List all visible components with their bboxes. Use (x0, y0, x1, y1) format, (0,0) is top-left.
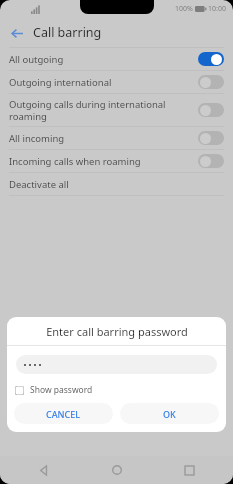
staticText: All outgoing (9, 53, 192, 66)
staticText: CANCEL (46, 408, 81, 420)
button[interactable]: CANCEL (14, 403, 113, 424)
button[interactable]: All incoming (0, 127, 233, 149)
staticText: Call barring (33, 24, 102, 41)
staticText: All incoming (9, 132, 192, 145)
button[interactable]: Show password (15, 382, 93, 398)
button[interactable]: OK (120, 403, 219, 424)
button[interactable]: Back (6, 22, 28, 44)
button[interactable]: Back (34, 460, 54, 480)
staticText: OK (163, 408, 176, 420)
button[interactable]: Password field (16, 355, 217, 374)
staticText: Show password (30, 384, 93, 396)
button[interactable]: Recents (179, 460, 199, 480)
staticText: 100% (175, 4, 193, 14)
staticText: Enter call barring password (46, 324, 188, 339)
button[interactable]: On (198, 52, 224, 66)
button[interactable]: All outgoing (0, 48, 233, 70)
button[interactable]: Home (107, 460, 127, 480)
button[interactable]: Outgoing calls during international roam… (0, 94, 233, 126)
button[interactable]: Incoming calls when roaming (0, 150, 233, 172)
button[interactable]: Off (198, 75, 224, 89)
button[interactable]: Off (198, 154, 224, 168)
button[interactable]: Off (198, 103, 224, 117)
button[interactable]: Off (198, 131, 224, 145)
button[interactable]: Outgoing international (0, 71, 233, 93)
button[interactable]: Deactivate all (0, 173, 233, 195)
staticText: Incoming calls when roaming (9, 155, 192, 168)
staticText: Outgoing international (9, 76, 192, 89)
staticText: 10:00 (208, 4, 226, 14)
staticText: Outgoing calls during international roam… (9, 98, 192, 122)
staticText: Deactivate all (9, 178, 69, 191)
